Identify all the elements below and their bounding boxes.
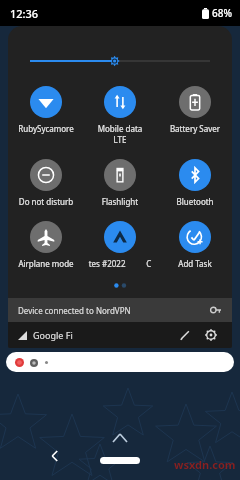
staticText: Do not disturb — [9, 196, 83, 207]
button[interactable]: Back — [44, 445, 66, 467]
staticText: Airplane mode — [9, 258, 83, 269]
button[interactable]: Battery Saver — [158, 84, 232, 136]
button[interactable]: Bluetooth — [158, 157, 232, 209]
staticText: tes #2022 C — [83, 258, 157, 269]
button[interactable]: tes #2022 C — [83, 219, 157, 271]
button[interactable] — [6, 352, 234, 372]
staticText: wsxdn.com — [174, 457, 236, 472]
button[interactable]: Device connected to NordVPN — [8, 298, 232, 322]
staticText: Battery Saver — [158, 123, 232, 134]
button[interactable]: Settings — [200, 324, 222, 346]
button[interactable]: Mobile data — [83, 84, 157, 147]
button[interactable]: Airplane mode — [9, 219, 83, 271]
staticText: Add Task — [158, 258, 232, 269]
staticText: 12:36 — [10, 6, 39, 21]
staticText: Flashlight — [83, 196, 157, 207]
button[interactable] — [8, 52, 232, 70]
staticText: Bluetooth — [158, 196, 232, 207]
other: VPN key — [210, 304, 222, 316]
staticText: Mobile data — [83, 123, 157, 134]
staticText: RubySycamore — [9, 123, 83, 134]
button[interactable]: Add Task — [158, 219, 232, 271]
other: Expand — [113, 434, 127, 442]
staticText: Google Fi — [33, 329, 73, 341]
button[interactable]: Edit — [174, 324, 196, 346]
staticText: Device connected to NordVPN — [18, 305, 131, 316]
button[interactable]: Home — [100, 457, 140, 464]
button[interactable]: Flashlight — [83, 157, 157, 209]
button[interactable]: Do not disturb — [9, 157, 83, 209]
staticText: 68% — [212, 6, 232, 20]
staticText: LTE — [83, 134, 157, 145]
button[interactable]: RubySycamore — [9, 84, 83, 136]
